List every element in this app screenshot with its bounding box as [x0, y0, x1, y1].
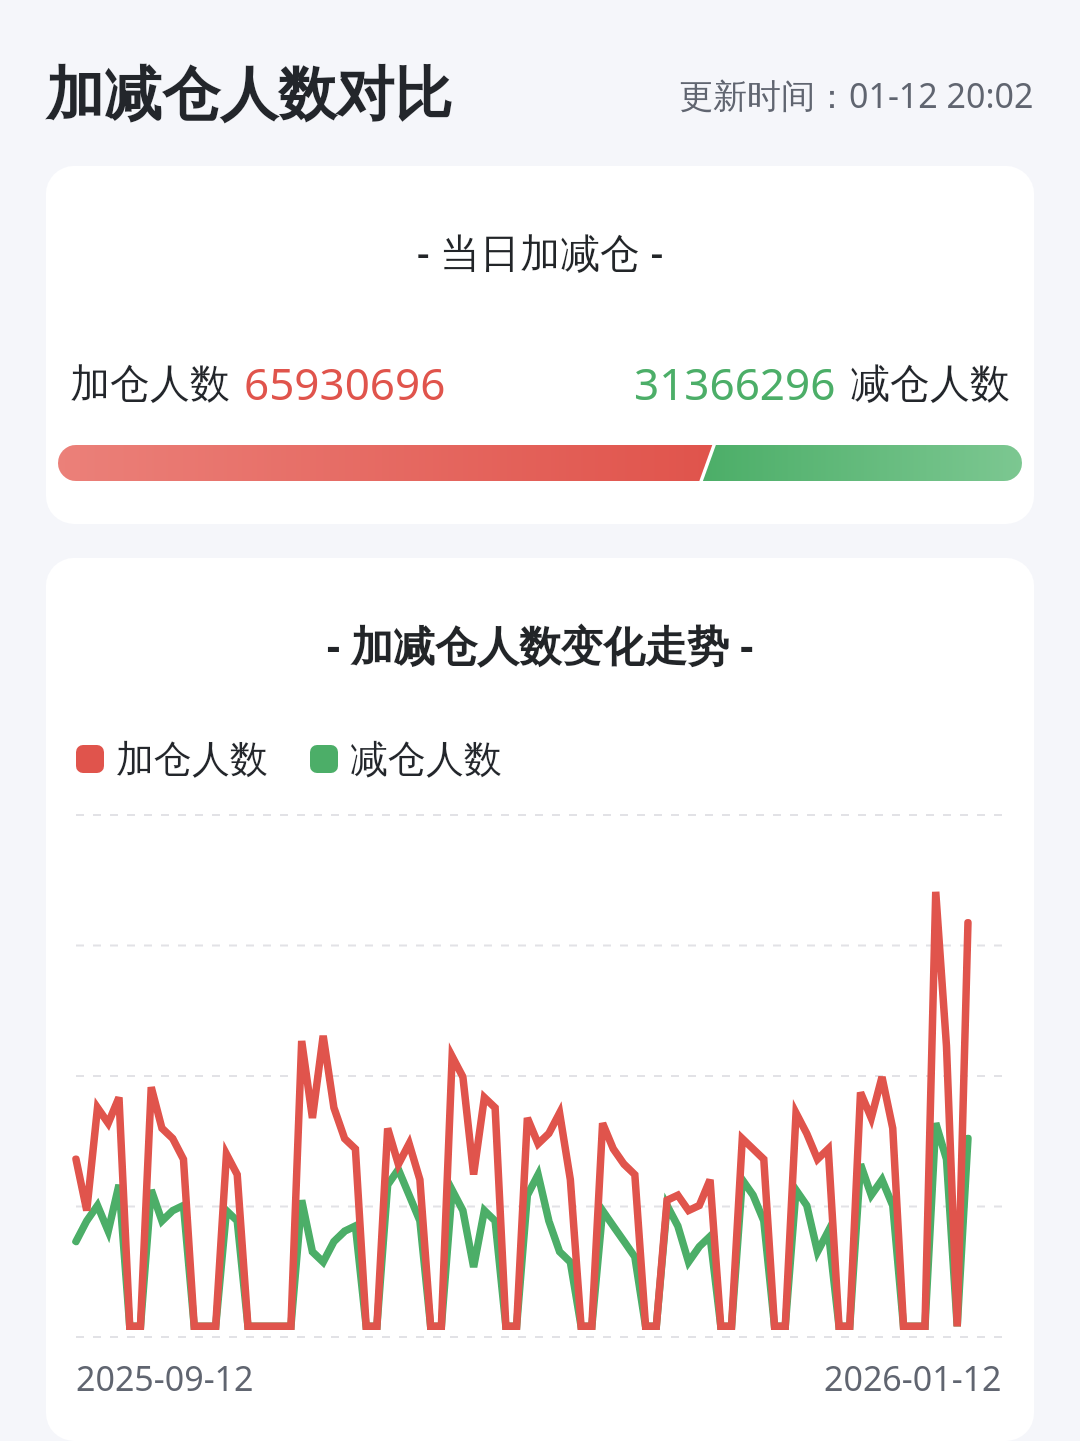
staticText: 2026-01-12: [824, 1355, 1002, 1401]
button[interactable]: - 当日加减仓 -: [46, 166, 1034, 524]
button[interactable]: - 加减仓人数变化走势 -: [46, 558, 1034, 1441]
staticText: 31366296: [634, 353, 836, 413]
staticText: 加仓人数: [70, 358, 230, 408]
staticText: - 加减仓人数变化走势 -: [46, 616, 1034, 673]
staticText: 65930696: [244, 353, 446, 413]
staticText: 减仓人数: [850, 358, 1010, 408]
staticText: 减仓人数: [350, 735, 502, 783]
staticText: 加减仓人数对比: [46, 58, 452, 131]
staticText: 加仓人数: [116, 735, 268, 783]
staticText: 2025-09-12: [76, 1355, 254, 1401]
staticText: - 当日加减仓 -: [46, 224, 1034, 279]
staticText: 更新时间：01-12 20:02: [679, 72, 1034, 118]
button[interactable]: 加仓人数: [76, 735, 268, 783]
button[interactable]: 减仓人数: [310, 735, 502, 783]
